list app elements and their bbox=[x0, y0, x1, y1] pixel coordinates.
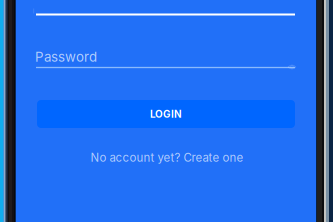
button[interactable]: LOGIN bbox=[37, 100, 295, 128]
button[interactable]: Show password bbox=[285, 60, 299, 74]
staticText: LOGIN bbox=[150, 108, 182, 120]
button[interactable]: No account yet? Create one bbox=[79, 149, 255, 167]
staticText: No account yet? Create one bbox=[90, 151, 243, 165]
staticText: Password bbox=[35, 49, 97, 65]
